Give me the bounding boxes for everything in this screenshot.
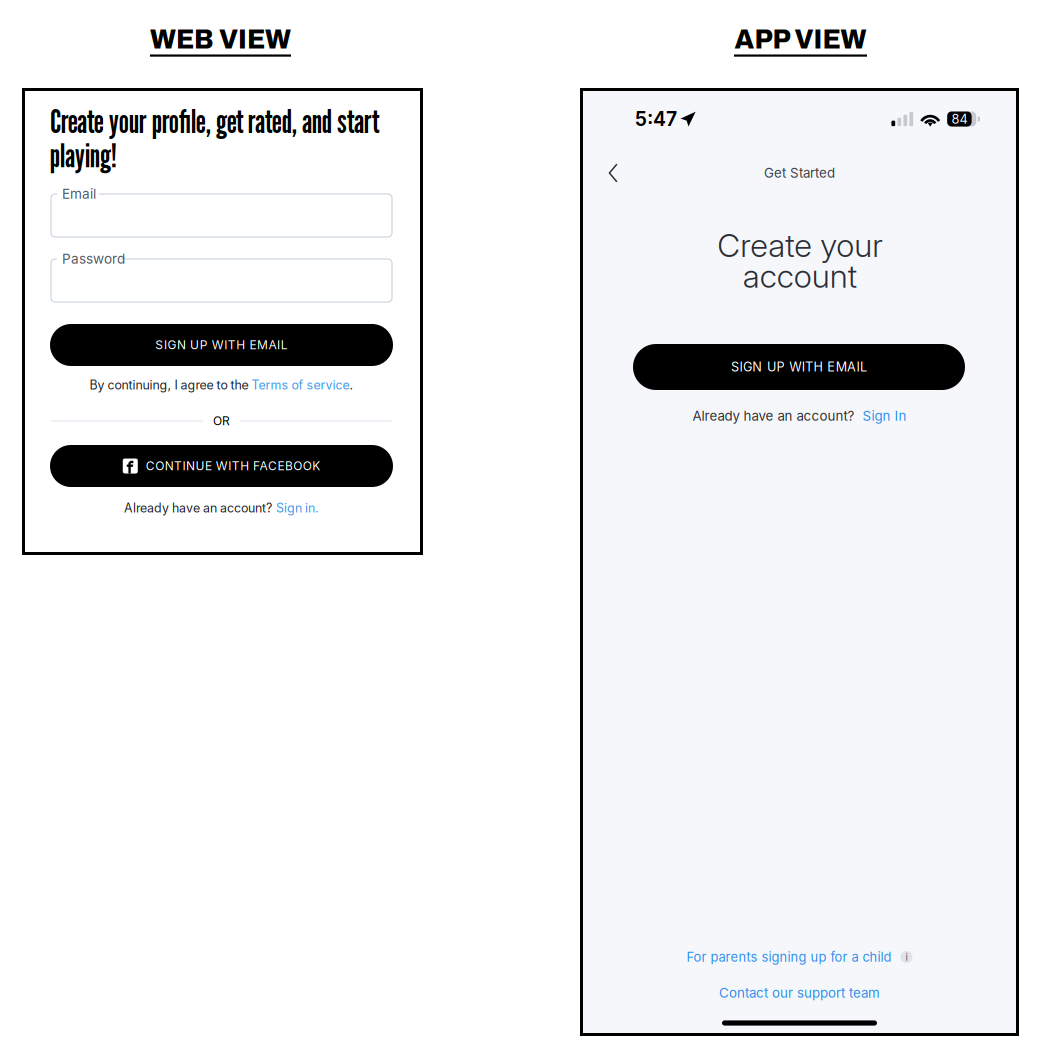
staticText: Email bbox=[62, 185, 96, 202]
button[interactable]: Already have an account? bbox=[692, 408, 906, 424]
button[interactable]: Terms of service bbox=[251, 377, 349, 392]
staticText: 5:47 bbox=[635, 107, 677, 131]
staticText: i bbox=[905, 951, 907, 963]
button[interactable]: CONTINUE WITH FACEBOOK bbox=[50, 445, 393, 487]
staticText: Create your account bbox=[717, 226, 882, 295]
staticText: playing! bbox=[50, 136, 117, 175]
button[interactable]: Already have an account? bbox=[124, 500, 319, 515]
staticText: Already have an account? bbox=[124, 500, 272, 515]
button[interactable]: Contact our support team bbox=[719, 985, 880, 1001]
staticText: Sign in. bbox=[276, 500, 319, 515]
staticText: Sign In bbox=[862, 408, 906, 424]
staticText: SIGN UP WITH EMAIL bbox=[731, 359, 867, 375]
button[interactable]: SIGN UP WITH EMAIL bbox=[633, 344, 965, 390]
button[interactable]: SIGN UP WITH EMAIL bbox=[50, 324, 393, 366]
button[interactable]: For parents signing up for a child bbox=[686, 949, 912, 965]
staticText: CONTINUE WITH FACEBOOK bbox=[146, 459, 320, 473]
button[interactable]: Back bbox=[593, 155, 633, 191]
staticText: . bbox=[349, 377, 353, 392]
staticText: 84 bbox=[951, 111, 967, 127]
staticText: For parents signing up for a child bbox=[686, 949, 891, 965]
staticText: APP VIEW bbox=[734, 24, 866, 54]
staticText: Create your profile, get rated, and star… bbox=[50, 102, 379, 140]
staticText: Terms of service bbox=[251, 377, 349, 392]
staticText: Get Started bbox=[764, 165, 835, 181]
staticText: Password bbox=[62, 250, 125, 267]
staticText: WEB VIEW bbox=[150, 24, 291, 54]
staticText: OR bbox=[213, 414, 230, 428]
staticText: Contact our support team bbox=[719, 985, 880, 1001]
staticText: SIGN UP WITH EMAIL bbox=[155, 338, 288, 352]
staticText: By continuing, I agree to the bbox=[89, 377, 251, 392]
staticText: Already have an account? bbox=[692, 408, 854, 424]
